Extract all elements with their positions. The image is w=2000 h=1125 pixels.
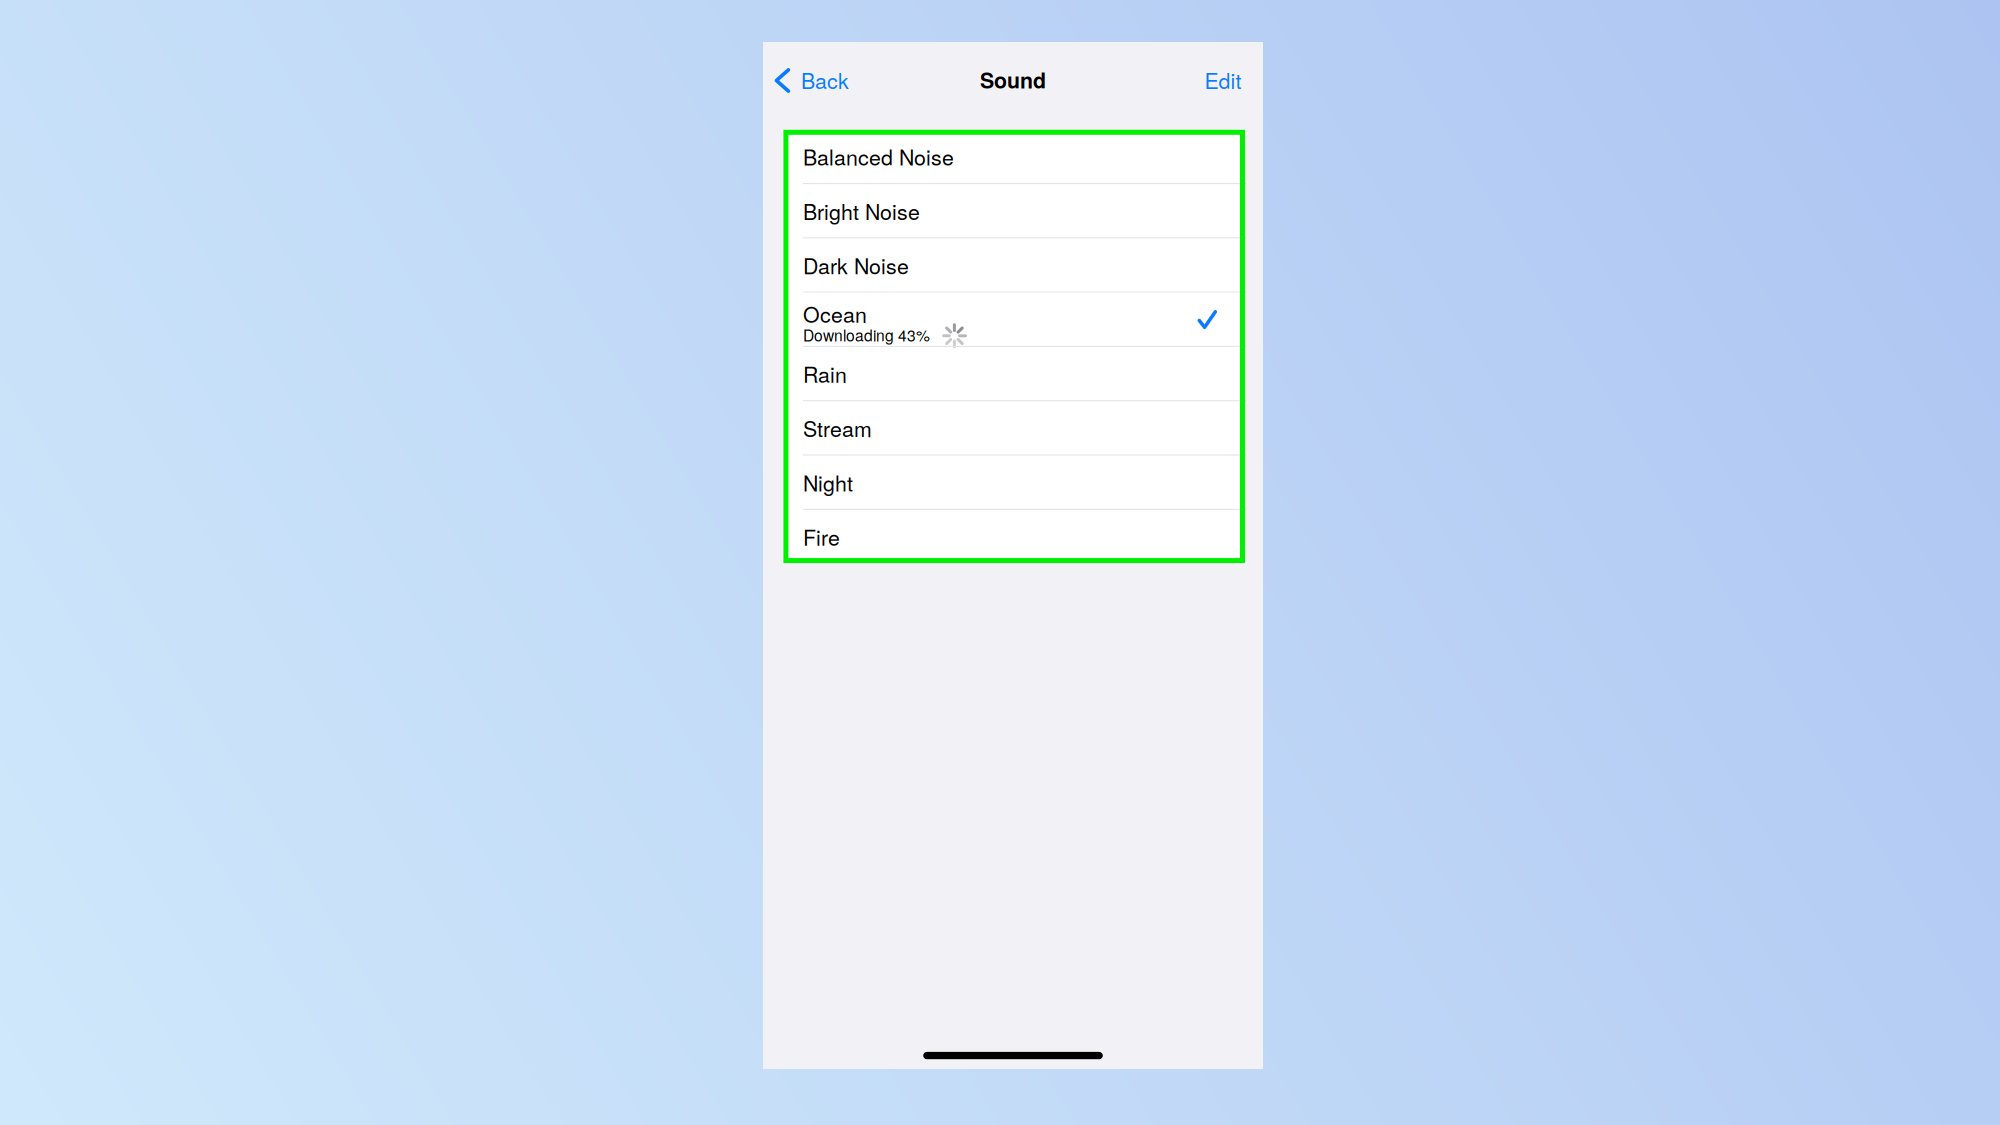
button[interactable]: Back [763, 42, 859, 117]
button[interactable]: Dark Noise [782, 238, 1246, 291]
staticText: Bright Noise [803, 195, 920, 226]
staticText: Ocean [803, 298, 867, 329]
button[interactable]: Fire [782, 510, 1246, 563]
staticText: Edit [1204, 64, 1241, 95]
staticText: Stream [803, 413, 872, 443]
button[interactable]: Ocean [782, 293, 1246, 346]
staticText: Rain [803, 358, 847, 389]
staticText: Balanced Noise [803, 141, 954, 172]
staticText: Dark Noise [803, 250, 909, 280]
button[interactable]: Stream [782, 401, 1246, 454]
staticText: Night [803, 467, 853, 497]
button[interactable]: Balanced Noise [782, 130, 1246, 183]
staticText: Fire [803, 521, 840, 552]
staticText: Sound [980, 64, 1046, 95]
staticText: Downloading 43% [803, 324, 930, 346]
button[interactable]: Rain [782, 347, 1246, 400]
button[interactable]: Night [782, 456, 1246, 509]
button[interactable]: Edit [1190, 42, 1263, 117]
button[interactable]: Bright Noise [782, 184, 1246, 237]
staticText: Back [801, 64, 849, 95]
